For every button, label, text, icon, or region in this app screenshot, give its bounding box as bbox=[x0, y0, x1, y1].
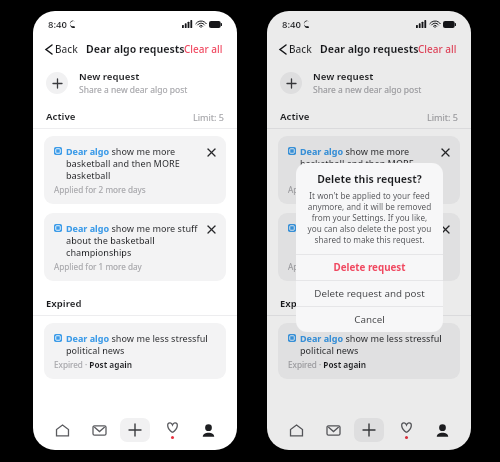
staticText: Delete request bbox=[333, 261, 406, 274]
staticText: Dear algo show me less stressful politic… bbox=[300, 332, 452, 356]
button[interactable]: Profile bbox=[193, 415, 223, 445]
button[interactable]: Delete request bbox=[296, 255, 443, 280]
staticText: Active bbox=[46, 110, 76, 123]
button[interactable]: New request bbox=[33, 61, 237, 105]
button[interactable]: Delete request bbox=[439, 146, 452, 159]
button[interactable]: Notifications bbox=[391, 415, 421, 445]
staticText: Back bbox=[289, 42, 312, 56]
button[interactable]: Home bbox=[281, 415, 311, 445]
button[interactable]: Cancel bbox=[296, 307, 443, 332]
staticText: Expired · Post again bbox=[288, 359, 367, 370]
staticText: Delete this request? bbox=[317, 172, 422, 186]
staticText: Dear algo show me more stuff about the b… bbox=[300, 222, 435, 258]
button[interactable]: Clear all bbox=[416, 40, 459, 58]
button[interactable]: Profile bbox=[427, 415, 457, 445]
staticText: Dear algo requests bbox=[320, 42, 419, 56]
button[interactable]: Notifications bbox=[157, 415, 187, 445]
staticText: Applied for 2 more days bbox=[288, 184, 380, 195]
staticText: Limit: 5 bbox=[427, 111, 458, 123]
button[interactable]: Create bbox=[120, 418, 150, 442]
staticText: Limit: 5 bbox=[193, 111, 224, 123]
staticText: Dear algo show me more stuff about the b… bbox=[66, 222, 201, 258]
button[interactable]: Delete request bbox=[205, 223, 218, 236]
button[interactable]: Home bbox=[47, 415, 77, 445]
staticText: Dear algo show me less stressful politic… bbox=[66, 332, 218, 356]
staticText: New request bbox=[79, 70, 140, 83]
staticText: Active bbox=[280, 110, 310, 123]
staticText: New request bbox=[313, 70, 374, 83]
staticText: It won't be applied to your feed anymore… bbox=[307, 190, 432, 245]
button[interactable]: New request bbox=[267, 61, 471, 105]
staticText: Share a new dear algo post bbox=[79, 84, 188, 96]
button[interactable]: Back bbox=[44, 39, 80, 59]
staticText: Clear all bbox=[418, 42, 457, 56]
staticText: Clear all bbox=[184, 42, 223, 56]
button[interactable]: Dear algo show me more stuff about the b… bbox=[44, 213, 226, 281]
button[interactable]: Messages bbox=[318, 415, 348, 445]
button[interactable]: Delete request and post bbox=[296, 281, 443, 306]
button[interactable]: Delete request bbox=[439, 223, 452, 236]
button[interactable]: Create bbox=[354, 418, 384, 442]
staticText: Expired bbox=[280, 297, 316, 310]
staticText: Back bbox=[55, 42, 78, 56]
staticText: 8:40 bbox=[282, 18, 301, 31]
staticText: Expired · Post again bbox=[54, 359, 133, 370]
button[interactable]: Dear algo show me more basketball and th… bbox=[44, 136, 226, 204]
staticText: Cancel bbox=[354, 313, 385, 326]
staticText: Expired bbox=[46, 297, 82, 310]
staticText: Dear algo show me more basketball and th… bbox=[300, 145, 435, 181]
button[interactable]: Dear algo show me more stuff about the b… bbox=[278, 213, 460, 281]
button[interactable]: Messages bbox=[84, 415, 114, 445]
button[interactable]: Delete request bbox=[205, 146, 218, 159]
button[interactable]: Dear algo show me less stressful politic… bbox=[278, 323, 460, 379]
button[interactable]: Back bbox=[278, 39, 314, 59]
staticText: Dear algo requests bbox=[86, 42, 185, 56]
staticText: Share a new dear algo post bbox=[313, 84, 422, 96]
button[interactable]: Dear algo show me less stressful politic… bbox=[44, 323, 226, 379]
button[interactable]: Clear all bbox=[182, 40, 225, 58]
staticText: Applied for 1 more day bbox=[54, 261, 142, 272]
staticText: 8:40 bbox=[48, 18, 67, 31]
staticText: Applied for 2 more days bbox=[54, 184, 146, 195]
staticText: Applied for 1 more day bbox=[288, 261, 376, 272]
staticText: Delete request and post bbox=[314, 287, 425, 300]
button[interactable]: Dear algo show me more basketball and th… bbox=[278, 136, 460, 204]
staticText: Dear algo show me more basketball and th… bbox=[66, 145, 201, 181]
